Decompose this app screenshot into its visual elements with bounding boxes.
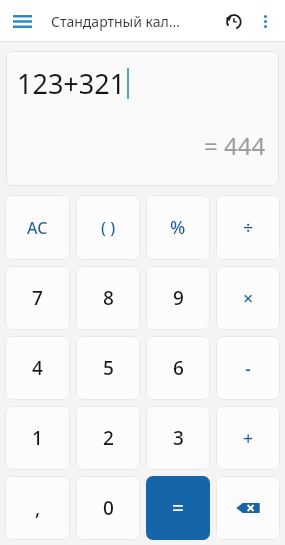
button[interactable]: +: [216, 406, 280, 470]
staticText: Стандартный кал…: [51, 12, 180, 31]
staticText: 4: [32, 355, 43, 381]
button[interactable]: 4: [5, 336, 70, 400]
button[interactable]: AC: [5, 195, 70, 260]
button[interactable]: %: [146, 195, 210, 260]
button[interactable]: 9: [146, 266, 210, 330]
staticText: -: [245, 356, 251, 381]
staticText: 2: [103, 425, 114, 451]
button[interactable]: Меню: [5, 4, 39, 38]
staticText: 5: [103, 355, 114, 381]
button[interactable]: 7: [5, 266, 70, 330]
staticText: ,: [35, 495, 41, 521]
staticText: ÷: [243, 215, 254, 240]
staticText: = 444: [204, 129, 266, 162]
staticText: %: [170, 215, 186, 240]
button[interactable]: Ещё: [250, 6, 280, 36]
staticText: AC: [27, 217, 48, 239]
staticText: ( ): [101, 217, 116, 239]
staticText: 1: [32, 425, 43, 451]
button[interactable]: 2: [76, 406, 140, 470]
button[interactable]: 5: [76, 336, 140, 400]
staticText: 3: [173, 425, 184, 451]
button[interactable]: ×: [216, 266, 280, 330]
button[interactable]: 1: [5, 406, 70, 470]
button[interactable]: =: [146, 476, 210, 540]
button[interactable]: ,: [5, 476, 70, 540]
button[interactable]: ÷: [216, 195, 280, 260]
staticText: 8: [103, 285, 114, 311]
button[interactable]: Удалить: [216, 476, 280, 540]
button[interactable]: 3: [146, 406, 210, 470]
staticText: =: [172, 494, 185, 523]
staticText: 9: [173, 285, 184, 311]
button[interactable]: 8: [76, 266, 140, 330]
staticText: 7: [32, 285, 43, 311]
staticText: ×: [243, 286, 254, 311]
button[interactable]: ( ): [76, 195, 140, 260]
staticText: 6: [173, 355, 184, 381]
staticText: +: [243, 426, 254, 451]
staticText: 0: [103, 495, 114, 521]
button[interactable]: -: [216, 336, 280, 400]
staticText: 123+321: [17, 65, 126, 102]
button[interactable]: История: [216, 4, 250, 38]
button[interactable]: 6: [146, 336, 210, 400]
button[interactable]: 0: [76, 476, 140, 540]
button[interactable]: 123+321: [6, 51, 279, 186]
